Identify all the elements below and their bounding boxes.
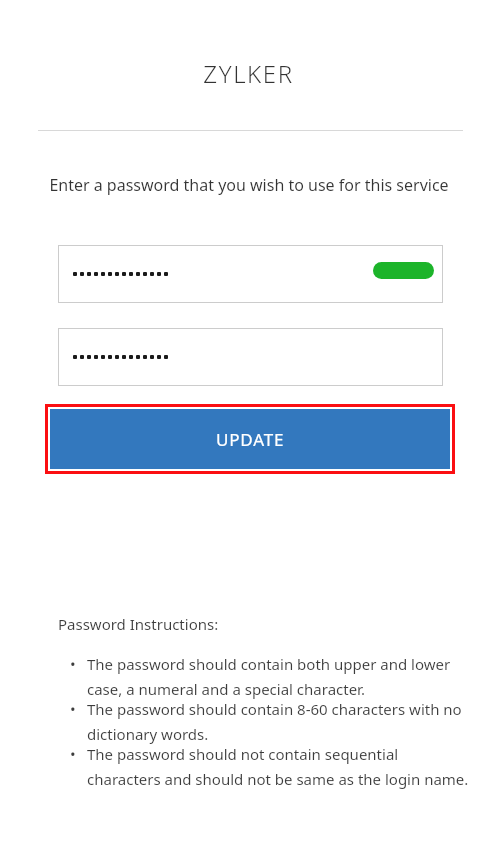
staticText: The password should contain both upper a…: [87, 654, 469, 699]
staticText: ZYLKER: [203, 57, 294, 90]
staticText: The password should not contain sequenti…: [87, 744, 469, 789]
button[interactable]: UPDATE: [50, 409, 450, 469]
button[interactable]: [58, 245, 443, 303]
staticText: Enter a password that you wish to use fo…: [49, 174, 449, 196]
staticText: The password should contain 8-60 charact…: [87, 699, 469, 744]
staticText: UPDATE: [216, 428, 285, 451]
staticText: •: [70, 654, 87, 674]
staticText: Password Instructions:: [58, 614, 219, 634]
staticText: •: [70, 699, 87, 719]
staticText: •: [70, 744, 87, 764]
button[interactable]: [58, 328, 443, 386]
